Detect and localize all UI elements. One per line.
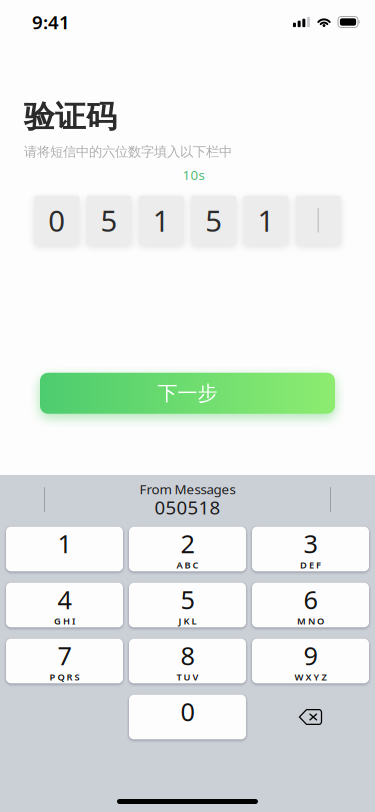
staticText: 1 <box>257 201 274 240</box>
staticText: D E F <box>300 559 321 571</box>
button[interactable]: 2 <box>129 527 246 571</box>
staticText: W X Y Z <box>294 671 326 683</box>
staticText: 1 <box>153 201 170 240</box>
staticText: 下一步 <box>157 381 217 406</box>
staticText: 4 <box>57 583 71 616</box>
button[interactable]: 4 <box>6 583 123 627</box>
button[interactable]: 3 <box>252 527 369 571</box>
button[interactable]: 5 <box>129 583 246 627</box>
staticText: 9:41 <box>32 10 70 34</box>
button[interactable]: 6 <box>252 583 369 627</box>
staticText: T U V <box>176 671 198 683</box>
staticText: 5 <box>180 583 194 616</box>
staticText: 8 <box>180 639 194 672</box>
staticText: 0 <box>180 695 194 728</box>
staticText: 050518 <box>154 495 220 520</box>
staticText: 3 <box>303 527 317 560</box>
staticText: 2 <box>180 527 194 560</box>
staticText: M N O <box>297 615 324 627</box>
button[interactable]: Delete <box>252 695 369 739</box>
button[interactable]: 1 <box>6 527 123 571</box>
button[interactable]: 8 <box>129 639 246 683</box>
staticText: A B C <box>176 559 198 571</box>
button[interactable]: 7 <box>6 639 123 683</box>
staticText: 请将短信中的六位数字填入以下栏中 <box>24 144 232 160</box>
staticText: 5 <box>100 201 117 240</box>
staticText: 验证码 <box>24 98 117 136</box>
staticText: J K L <box>178 615 196 627</box>
staticText: 7 <box>57 639 71 672</box>
staticText: P Q R S <box>49 671 79 683</box>
staticText: 5 <box>205 201 222 240</box>
button[interactable]: 9 <box>252 639 369 683</box>
staticText: 0 <box>48 201 65 240</box>
button[interactable]: 0 <box>129 695 246 739</box>
staticText: From Messages <box>139 480 235 498</box>
staticText: 10s <box>182 166 204 184</box>
staticText: 9 <box>303 639 317 672</box>
staticText: 1 <box>57 527 71 560</box>
button[interactable]: 下一步 <box>40 373 335 414</box>
staticText: G H I <box>54 615 75 627</box>
staticText: 6 <box>303 583 317 616</box>
